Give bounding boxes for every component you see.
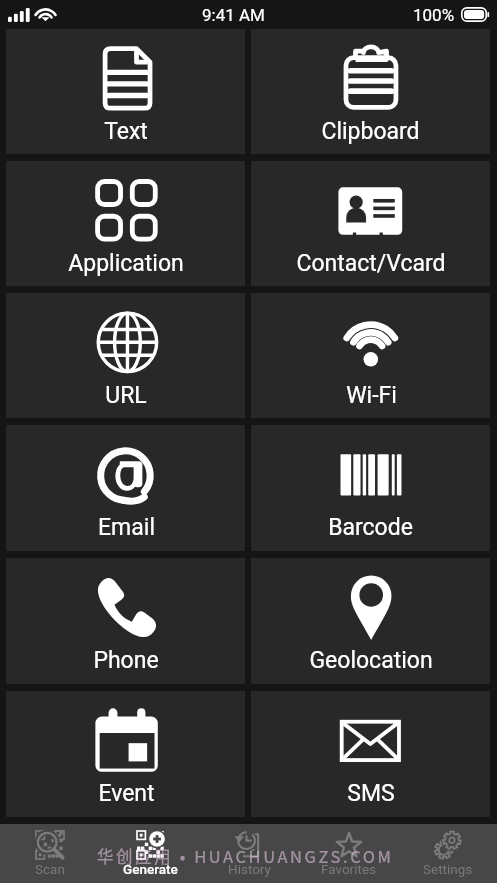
staticText: Text (104, 118, 148, 145)
staticText: Application (68, 250, 184, 277)
staticText: Favorites (321, 861, 377, 877)
staticText: SMS (347, 780, 395, 807)
staticText: 9:41 AM (202, 5, 265, 25)
staticText: Contact/Vcard (296, 250, 446, 277)
button[interactable]: Favorites (299, 824, 398, 883)
staticText: Clipboard (321, 118, 420, 145)
button[interactable]: Phone (6, 558, 245, 684)
button[interactable]: Contact/Vcard (251, 161, 490, 286)
staticText: Settings (423, 861, 473, 877)
staticText: Scan (35, 861, 65, 877)
button[interactable]: URL (6, 293, 245, 418)
staticText: Event (98, 780, 155, 807)
button[interactable]: Generate (100, 824, 200, 883)
staticText: Barcode (328, 514, 413, 541)
staticText: 华创应用 • HUACHUANGZS.COM (97, 844, 394, 868)
staticText: Email (98, 514, 155, 541)
staticText: 100% (413, 5, 455, 25)
staticText: URL (105, 382, 147, 409)
staticText: Generate (123, 861, 178, 877)
button[interactable]: Email (6, 425, 245, 551)
staticText: Wi-Fi (346, 382, 397, 409)
button[interactable]: Clipboard (251, 29, 490, 154)
button[interactable]: Barcode (251, 425, 490, 551)
staticText: Geolocation (309, 647, 433, 674)
button[interactable]: Geolocation (251, 558, 490, 684)
button[interactable]: History (200, 824, 299, 883)
button[interactable]: Text (6, 29, 245, 154)
button[interactable]: SMS (251, 691, 490, 817)
staticText: Phone (93, 647, 159, 674)
button[interactable]: Event (6, 691, 245, 817)
button[interactable]: Settings (398, 824, 497, 883)
button[interactable]: Wi-Fi (251, 293, 490, 418)
button[interactable]: Scan (0, 824, 100, 883)
staticText: History (228, 861, 271, 877)
button[interactable]: Application (6, 161, 245, 286)
